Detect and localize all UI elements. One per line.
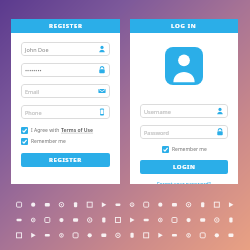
staticText: Remember me (172, 146, 207, 153)
button[interactable]: John Doe (21, 42, 110, 56)
button[interactable]: •••••••• (21, 63, 110, 77)
staticText: Username (144, 108, 216, 115)
staticText: •••••••• (25, 67, 98, 74)
button[interactable]: Email (21, 84, 110, 98)
staticText: Terms of Use (61, 127, 94, 134)
button[interactable]: Remember me (140, 146, 228, 153)
staticText: Password (144, 129, 216, 136)
staticText: LOGIN (173, 163, 196, 171)
button[interactable]: Phone (21, 105, 110, 119)
button[interactable]: Password (140, 125, 228, 139)
staticText: REGISTER (49, 156, 82, 164)
staticText: I Agree with (31, 127, 61, 134)
staticText: John Doe (25, 46, 98, 53)
staticText: LOG IN (171, 22, 197, 30)
button[interactable]: I Agree with (21, 127, 110, 134)
button[interactable]: Username (140, 104, 228, 118)
button[interactable]: REGISTER (21, 153, 110, 167)
staticText: REGISTER (49, 22, 83, 30)
button[interactable]: Remember me (21, 138, 110, 145)
staticText: Email (25, 88, 98, 95)
staticText: Remember me (31, 138, 66, 145)
staticText: Forgot your password? (157, 181, 211, 184)
button[interactable]: LOGIN (140, 160, 228, 174)
button[interactable]: Forgot your password? (157, 181, 211, 184)
button[interactable]: Profile avatar (165, 47, 203, 85)
staticText: Phone (25, 109, 98, 116)
